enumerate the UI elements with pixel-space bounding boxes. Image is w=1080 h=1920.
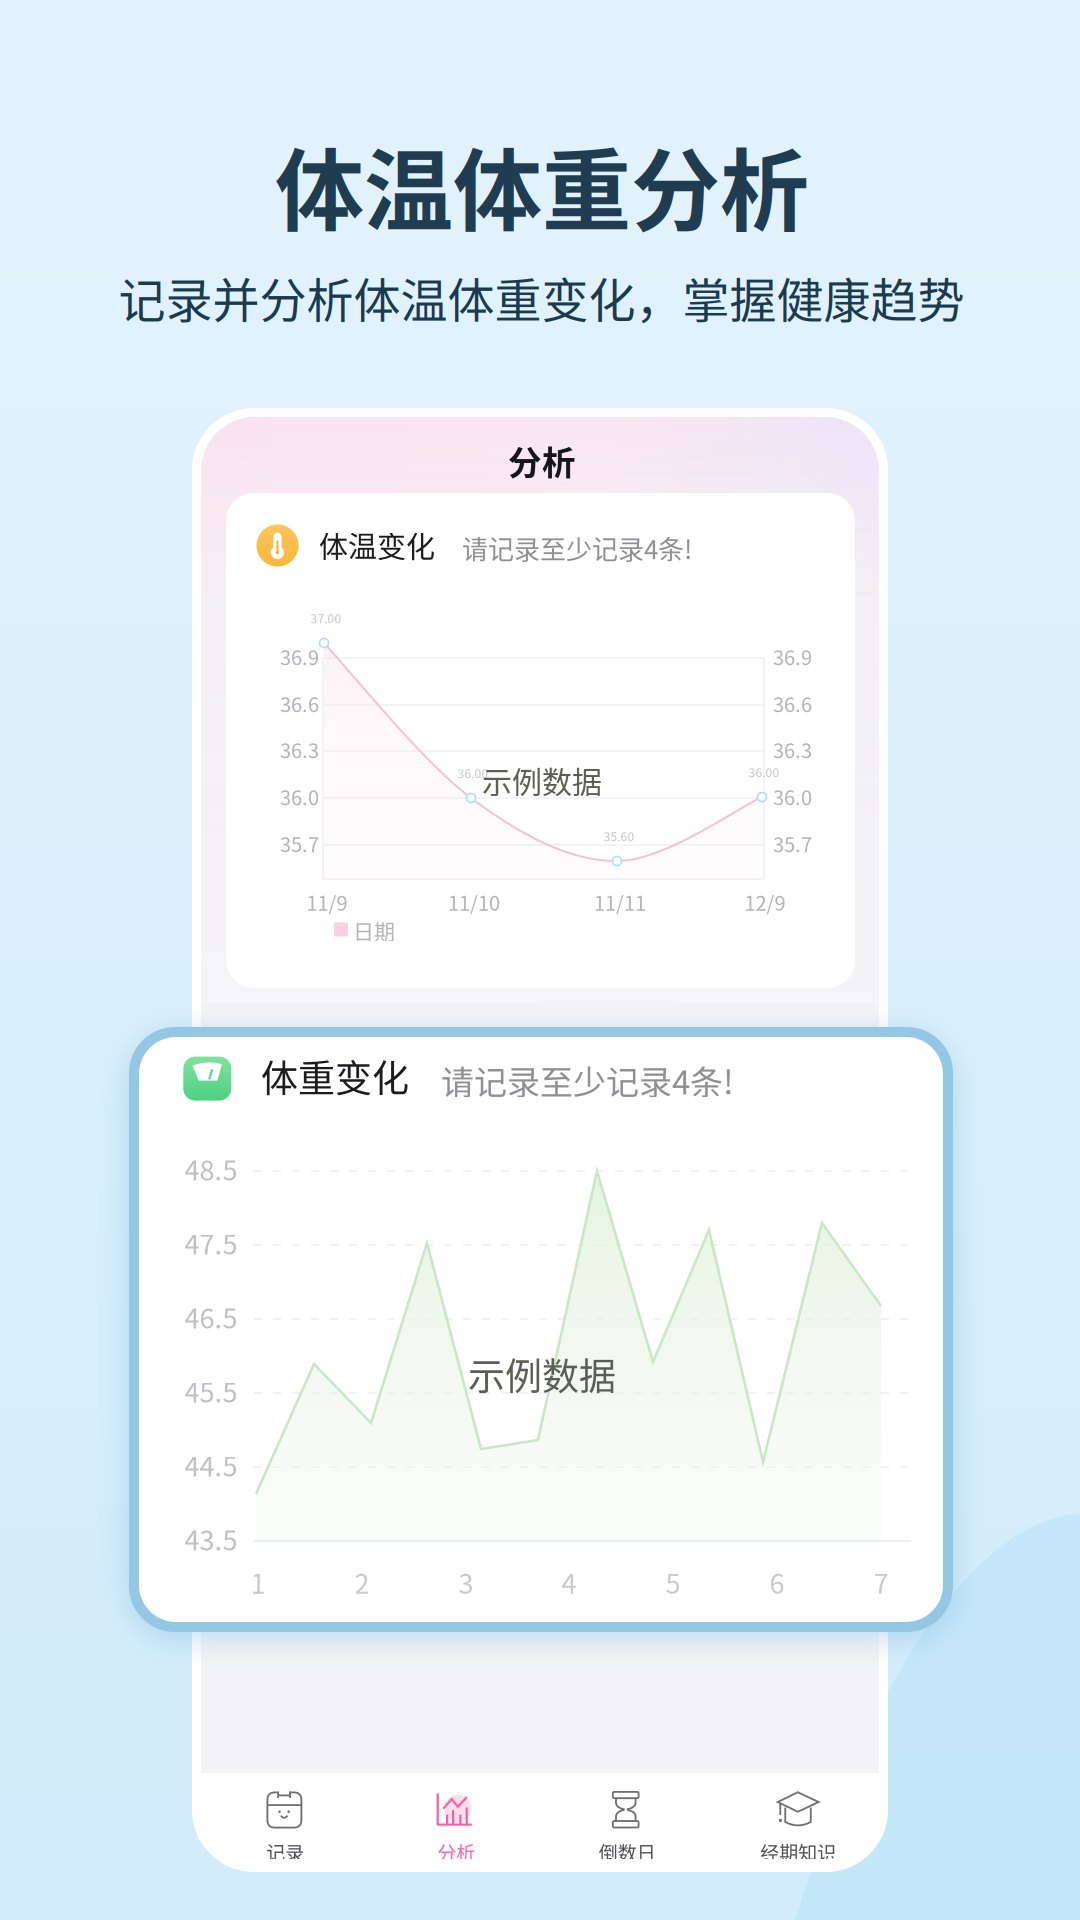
staticText: 36.6 — [773, 689, 812, 718]
staticText: 36.00 — [457, 764, 488, 782]
staticText: 6 — [769, 1562, 784, 1602]
staticText: 36.3 — [773, 735, 812, 764]
staticText: 体温变化 — [319, 524, 435, 566]
staticText: 5 — [665, 1562, 680, 1602]
staticText: 36.9 — [280, 642, 319, 671]
staticText: 11/10 — [448, 887, 500, 916]
staticText: 记录并分析体温体重变化，掌握健康趋势 — [118, 263, 964, 331]
staticText: 11/11 — [594, 887, 646, 916]
staticText: 36.6 — [280, 689, 319, 718]
staticText: 分析 — [508, 436, 576, 485]
button[interactable]: 分析 — [369, 1773, 540, 1859]
staticText: 4 — [561, 1562, 576, 1602]
staticText: 体温体重分析 — [275, 120, 809, 249]
staticText: 46.5 — [184, 1297, 237, 1336]
staticText: 7 — [873, 1562, 888, 1602]
button[interactable]: 经期知识 — [711, 1773, 882, 1859]
staticText: 36.00 — [748, 763, 779, 781]
staticText: 11/9 — [306, 887, 347, 916]
staticText: 1 — [250, 1562, 265, 1602]
staticText: 分析 — [437, 1838, 475, 1866]
staticText: 请记录至少记录4条! — [441, 1056, 734, 1104]
staticText: 2 — [354, 1562, 369, 1602]
staticText: 请记录至少记录4条! — [462, 529, 692, 567]
staticText: 36.9 — [773, 642, 812, 671]
staticText: 44.5 — [184, 1445, 237, 1484]
staticText: 36.3 — [280, 735, 319, 764]
staticText: 48.5 — [184, 1149, 237, 1188]
button[interactable]: 倒数日 — [540, 1773, 711, 1859]
staticText: 倒数日 — [599, 1838, 656, 1866]
staticText: 35.7 — [773, 829, 812, 858]
button[interactable]: 记录 — [198, 1773, 369, 1859]
staticText: 35.7 — [280, 829, 319, 858]
staticText: 示例数据 — [468, 1347, 616, 1401]
staticText: 3 — [458, 1562, 473, 1602]
staticText: 36.0 — [773, 782, 812, 811]
staticText: 45.5 — [184, 1371, 237, 1410]
staticText: 37.00 — [310, 609, 341, 627]
staticText: 35.60 — [603, 827, 634, 845]
staticText: 36.0 — [280, 782, 319, 811]
staticText: 47.5 — [184, 1223, 237, 1262]
staticText: 体重变化 — [261, 1049, 409, 1103]
staticText: 记录 — [266, 1838, 304, 1866]
staticText: 43.5 — [184, 1519, 237, 1558]
staticText: 示例数据 — [482, 758, 602, 802]
staticText: 日期 — [353, 915, 395, 945]
staticText: 12/9 — [744, 887, 785, 916]
staticText: 经期知识 — [760, 1838, 836, 1866]
